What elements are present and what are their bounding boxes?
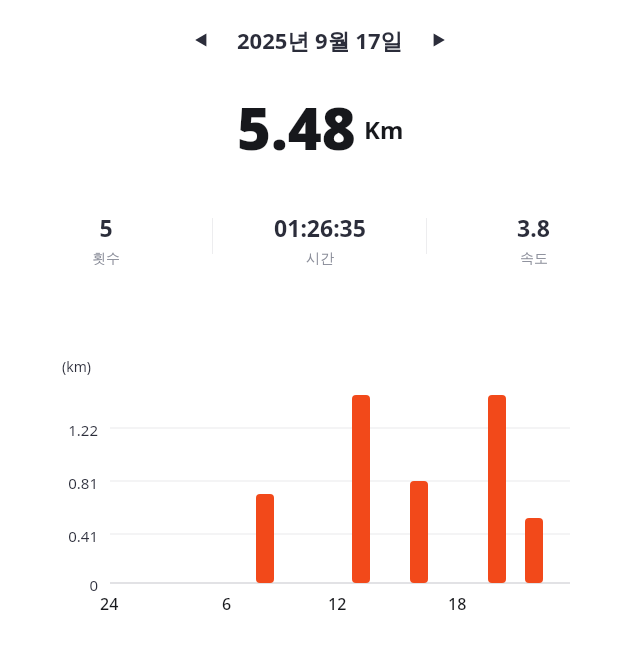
button[interactable]: 01:26:35	[213, 206, 426, 266]
button[interactable]: 2025년 9월 17일	[237, 25, 403, 55]
staticText: 속도	[520, 250, 548, 266]
staticText: 1.22	[68, 420, 98, 440]
staticText: 18	[448, 593, 467, 615]
button[interactable]: 5	[0, 206, 212, 266]
staticText: 시간	[306, 250, 334, 266]
button[interactable]: 3.8	[427, 206, 640, 266]
staticText: Km	[364, 113, 404, 146]
staticText: 24	[100, 593, 119, 615]
staticText: 0.81	[68, 473, 98, 493]
staticText: 5.48	[237, 88, 356, 152]
button[interactable]: Previous day	[181, 20, 221, 60]
staticText: 2025년 9월 17일	[237, 25, 403, 55]
button[interactable]: Next day	[419, 20, 459, 60]
staticText: 12	[328, 593, 347, 615]
staticText: (km)	[62, 357, 91, 376]
staticText: 6	[222, 593, 232, 615]
staticText: 01:26:35	[274, 212, 366, 243]
staticText: 횟수	[92, 250, 120, 266]
staticText: 3.8	[517, 212, 550, 243]
staticText: 0.41	[68, 526, 98, 546]
staticText: 5	[99, 212, 113, 243]
staticText: 0	[89, 575, 98, 595]
